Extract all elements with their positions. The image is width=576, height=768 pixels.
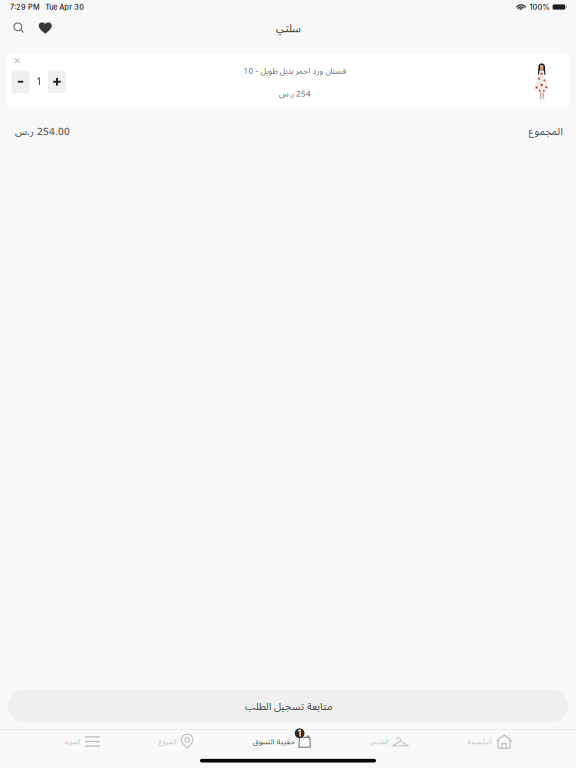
button[interactable]: حقيبة التسوق xyxy=(252,730,311,752)
staticText: الرئيسية xyxy=(467,736,492,746)
button[interactable]: Increase quantity xyxy=(48,70,66,93)
staticText: 1 xyxy=(298,728,302,738)
staticText: 100% xyxy=(530,3,550,11)
button[interactable]: Search xyxy=(5,17,32,39)
button[interactable]: Remove item xyxy=(11,55,22,66)
button[interactable]: متابعة تسجيل الطلب xyxy=(8,689,568,722)
staticText: المزيد xyxy=(63,736,80,746)
staticText: Tue Apr 30 xyxy=(45,3,84,11)
staticText: حقيبة التسوق xyxy=(252,736,294,746)
staticText: متابعة تسجيل الطلب xyxy=(244,699,331,713)
staticText: المتجر xyxy=(369,736,388,746)
button[interactable]: الرئيسية xyxy=(467,730,513,752)
staticText: 254.00 ر.س xyxy=(14,124,69,138)
staticText: 1 xyxy=(37,76,41,88)
staticText: 7:29 PM xyxy=(10,3,40,11)
button[interactable]: Decrease quantity xyxy=(11,70,29,93)
button[interactable]: Favourites xyxy=(32,17,58,39)
staticText: المجموع xyxy=(528,124,562,138)
button[interactable]: المتجر xyxy=(369,730,409,752)
staticText: فستان ورد احمر بذيل طويل - 10 xyxy=(243,65,346,76)
button[interactable]: الفروع xyxy=(158,730,194,752)
button[interactable]: المزيد xyxy=(63,730,100,752)
staticText: 254 ر.س xyxy=(278,88,310,99)
staticText: سلتي xyxy=(275,20,300,35)
staticText: الفروع xyxy=(158,736,176,746)
